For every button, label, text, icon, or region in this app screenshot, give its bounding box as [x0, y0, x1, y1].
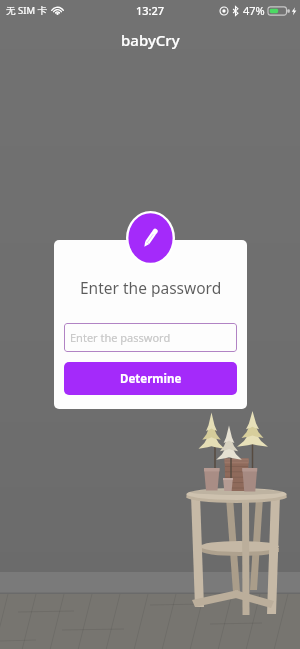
staticText: Enter the password [70, 330, 171, 345]
staticText: Determine [120, 371, 182, 387]
staticText: 无 SIM 卡 [6, 4, 47, 17]
staticText: 47% [243, 3, 265, 18]
staticText: babyCry [121, 30, 180, 50]
staticText: 13:27 [136, 3, 165, 18]
button[interactable]: Edit password [126, 211, 175, 265]
button[interactable]: Enter the password [64, 323, 237, 352]
button[interactable]: Determine [64, 362, 237, 395]
staticText: Enter the password [80, 277, 222, 297]
